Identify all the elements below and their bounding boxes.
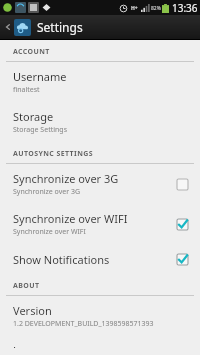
button[interactable]: Version bbox=[0, 296, 200, 336]
staticText: Storage bbox=[13, 109, 54, 124]
staticText: Settings bbox=[37, 19, 83, 35]
staticText: Username bbox=[13, 69, 67, 84]
staticText: H+ bbox=[131, 5, 138, 12]
staticText: Show Notifications bbox=[13, 252, 110, 267]
button[interactable]: Checked bbox=[174, 216, 190, 232]
staticText: AUTOSYNC SETTINGS bbox=[13, 149, 93, 159]
staticText: 13:36 bbox=[172, 1, 198, 15]
button[interactable]: Back bbox=[3, 15, 13, 39]
staticText: finaltest bbox=[13, 85, 40, 95]
button[interactable]: Username bbox=[0, 62, 200, 102]
staticText: Synchronize over WIFI bbox=[13, 211, 128, 226]
button[interactable]: Synchronize over WIFI bbox=[0, 204, 200, 244]
staticText: Synchronize over WIFI bbox=[13, 227, 86, 237]
staticText: 82% bbox=[151, 5, 161, 12]
staticText: ABOUT bbox=[13, 281, 40, 291]
button[interactable]: Unchecked bbox=[174, 176, 190, 192]
staticText: Synchronize over 3G bbox=[13, 171, 119, 186]
button[interactable]: Show Notifications bbox=[0, 244, 200, 274]
staticText: 1.2 DEVELOPMENT_BUILD_1398598571393 bbox=[13, 319, 154, 329]
button[interactable]: Storage bbox=[0, 102, 200, 142]
staticText: ACCOUNT bbox=[13, 47, 50, 57]
staticText: Storage Settings bbox=[13, 125, 67, 135]
button[interactable]: Checked bbox=[174, 251, 190, 267]
staticText: Language bbox=[13, 343, 65, 348]
button[interactable]: Synchronize over 3G bbox=[0, 164, 200, 204]
staticText: Version bbox=[13, 303, 52, 318]
staticText: Synchronize over 3G bbox=[13, 187, 81, 197]
